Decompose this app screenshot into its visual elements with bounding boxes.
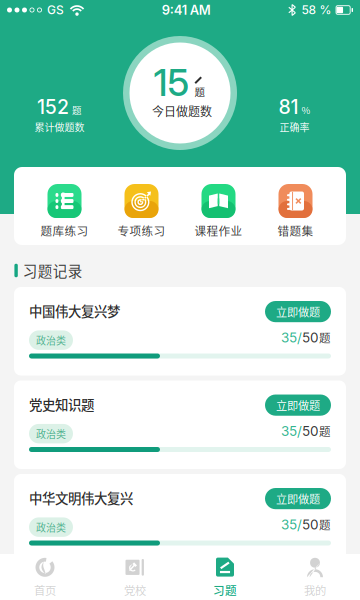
button[interactable]: 我的 xyxy=(270,558,360,598)
staticText: 题库练习 xyxy=(40,222,88,239)
staticText: 35/ xyxy=(281,329,302,346)
button[interactable]: 课程作业 xyxy=(180,184,257,238)
staticText: 立即做题 xyxy=(276,397,320,413)
button[interactable]: 党史知识题 xyxy=(14,380,346,469)
staticText: 课程作业 xyxy=(194,222,242,239)
staticText: 50 xyxy=(302,423,319,439)
staticText: 党校 xyxy=(124,582,146,598)
staticText: 我的 xyxy=(304,582,326,598)
staticText: 15 xyxy=(153,60,189,105)
staticText: 题 xyxy=(319,423,331,439)
staticText: GS xyxy=(47,3,64,17)
staticText: 习题 xyxy=(213,582,237,598)
staticText: 35/ xyxy=(281,423,302,439)
staticText: 今日做题数 xyxy=(152,102,212,120)
staticText: 50 xyxy=(302,516,319,533)
staticText: 题 xyxy=(319,516,331,533)
staticText: 题 xyxy=(72,103,82,117)
staticText: 正确率 xyxy=(279,120,309,134)
button[interactable]: 题库练习 xyxy=(26,184,103,238)
button[interactable]: 专项练习 xyxy=(103,184,180,238)
staticText: 58 % xyxy=(302,3,332,17)
staticText: 专项练习 xyxy=(117,222,165,239)
staticText: % xyxy=(301,103,310,117)
staticText: 习题记录 xyxy=(23,260,83,281)
button[interactable]: 错题集 xyxy=(257,184,334,238)
staticText: 中国伟大复兴梦 xyxy=(29,301,120,320)
staticText: 152 xyxy=(37,95,69,119)
button[interactable]: 中国伟大复兴梦 xyxy=(14,287,346,375)
staticText: 错题集 xyxy=(277,222,313,239)
staticText: 首页 xyxy=(34,582,56,598)
staticText: 党史知识题 xyxy=(29,394,94,414)
staticText: 累计做题数 xyxy=(34,120,84,134)
staticText: 题 xyxy=(319,329,331,346)
staticText: 中华文明伟大复兴 xyxy=(29,488,133,507)
staticText: 政治类 xyxy=(36,333,66,347)
staticText: 立即做题 xyxy=(276,490,320,507)
staticText: 50 xyxy=(302,329,319,346)
staticText: 政治类 xyxy=(36,520,66,534)
staticText: 政治类 xyxy=(36,426,66,441)
staticText: 立即做题 xyxy=(276,303,320,320)
button[interactable]: 中华文明伟大复兴 xyxy=(14,474,346,562)
staticText: 9:41 AM xyxy=(162,2,211,18)
staticText: 81 xyxy=(278,95,298,119)
staticText: 35/ xyxy=(281,516,302,533)
button[interactable]: 习题 xyxy=(180,558,270,598)
button[interactable]: 首页 xyxy=(0,558,90,598)
staticText: 题 xyxy=(194,84,205,99)
button[interactable]: 党校 xyxy=(90,558,180,598)
